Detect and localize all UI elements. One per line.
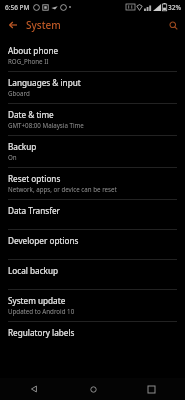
staticText: About phone [8, 45, 59, 56]
button[interactable]: Regulatory labels [0, 322, 185, 351]
button[interactable]: Home [68, 378, 118, 400]
staticText: Data Transfer [8, 205, 60, 216]
staticText: ROG_Phone II [8, 57, 49, 65]
staticText: Date & time [8, 109, 54, 120]
button[interactable]: Recent apps [126, 378, 176, 400]
staticText: GMT+08:00 Malaysia Time [8, 121, 84, 129]
staticText: Gboard [8, 89, 30, 97]
staticText: 32% [168, 3, 181, 12]
staticText: 6:56 PM [5, 3, 30, 12]
button[interactable]: Back [0, 14, 26, 36]
staticText: Developer options [8, 235, 79, 246]
staticText: Reset options [8, 173, 61, 184]
button[interactable]: Languages & input [0, 72, 185, 103]
staticText: Regulatory labels [8, 327, 75, 338]
button[interactable]: Date & time [0, 104, 185, 135]
button[interactable]: Search [161, 14, 185, 36]
staticText: Local backup [8, 265, 59, 276]
staticText: Backup [8, 141, 37, 152]
staticText: On [8, 153, 17, 161]
button[interactable]: Data Transfer [0, 200, 185, 229]
button[interactable]: About phone [0, 40, 185, 71]
staticText: System [26, 18, 61, 32]
button[interactable]: Backup [0, 136, 185, 167]
staticText: Languages & input [8, 77, 81, 88]
button[interactable]: System update [0, 290, 185, 321]
staticText: Network, apps, or device can be reset [8, 185, 117, 193]
staticText: Updated to Android 10 [8, 307, 75, 315]
button[interactable]: Local backup [0, 260, 185, 289]
button[interactable]: Developer options [0, 230, 185, 259]
staticText: System update [8, 295, 66, 306]
button[interactable]: Reset options [0, 168, 185, 199]
button[interactable]: Back [9, 378, 59, 400]
